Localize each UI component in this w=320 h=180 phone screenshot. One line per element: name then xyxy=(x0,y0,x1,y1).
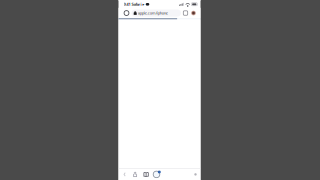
staticText: apple.com/iphone xyxy=(138,10,168,16)
button[interactable]: Page Settings xyxy=(121,8,131,18)
button[interactable]: Account xyxy=(189,8,197,18)
button[interactable]: Back xyxy=(119,169,130,180)
button[interactable]: More xyxy=(191,169,199,180)
staticText: 9:41 Safari ▸ xyxy=(123,2,144,7)
button[interactable]: Bookmarks xyxy=(140,169,152,180)
button[interactable]: Share xyxy=(130,169,140,180)
button[interactable]: Tab Overview xyxy=(152,169,161,180)
button[interactable]: apple.com/iphone xyxy=(131,9,181,17)
button[interactable]: Tabs xyxy=(181,8,189,18)
